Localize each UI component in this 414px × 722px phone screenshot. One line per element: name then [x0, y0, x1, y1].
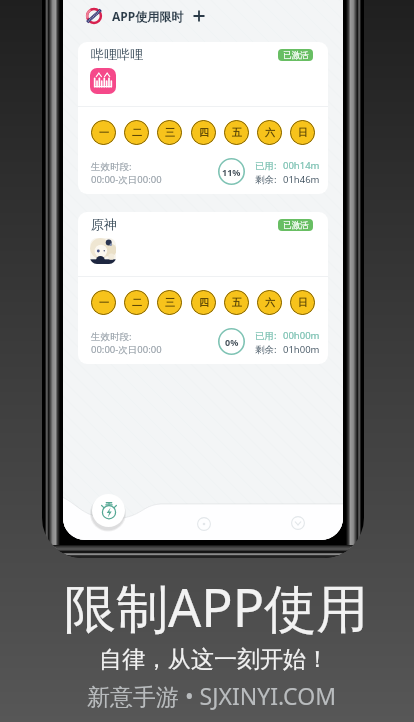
staticText: 三 — [165, 296, 175, 309]
button[interactable]: Back — [291, 516, 305, 530]
staticText: 一 — [99, 126, 109, 139]
button[interactable]: 五 — [224, 290, 249, 315]
button[interactable]: 二 — [124, 290, 149, 315]
button[interactable]: 三 — [157, 290, 182, 315]
staticText: 三 — [165, 126, 175, 139]
staticText: 已激活 — [283, 220, 309, 231]
button[interactable]: 原神 — [78, 212, 328, 364]
button[interactable]: Add — [191, 8, 207, 24]
button[interactable]: 四 — [191, 290, 216, 315]
staticText: 已激活 — [283, 50, 309, 61]
staticText: 11% — [222, 166, 241, 178]
staticText: 二 — [132, 126, 142, 139]
button[interactable]: 哔哩哔哩 — [78, 42, 328, 194]
staticText: 00h14m — [283, 159, 320, 172]
button[interactable]: 日 — [290, 120, 315, 145]
staticText: 00h00m — [283, 329, 320, 342]
staticText: 剩余: — [255, 173, 277, 186]
staticText: 二 — [132, 296, 142, 309]
staticText: 00:00-次日00:00 — [91, 173, 162, 186]
staticText: 生效时段: — [91, 160, 132, 173]
button[interactable]: 二 — [124, 120, 149, 145]
button[interactable]: 一 — [91, 290, 116, 315]
staticText: 日 — [298, 296, 308, 309]
staticText: 哔哩哔哩 — [91, 46, 143, 62]
staticText: 五 — [232, 296, 242, 309]
staticText: 已用: — [255, 159, 277, 172]
staticText: 剩余: — [255, 343, 277, 356]
staticText: 四 — [199, 296, 209, 309]
staticText: 01h00m — [283, 343, 320, 356]
staticText: 六 — [265, 296, 275, 309]
staticText: 新意手游 • SJXINYI.COM — [87, 680, 336, 711]
button[interactable]: 已激活 — [278, 219, 313, 231]
staticText: 已用: — [255, 329, 277, 342]
staticText: 四 — [199, 126, 209, 139]
staticText: 一 — [99, 296, 109, 309]
staticText: 自律，从这一刻开始！ — [99, 645, 329, 674]
staticText: 0% — [225, 336, 239, 348]
staticText: 五 — [232, 126, 242, 139]
staticText: 日 — [298, 126, 308, 139]
staticText: 01h46m — [283, 173, 320, 186]
button[interactable]: 已激活 — [278, 49, 313, 61]
button[interactable]: 三 — [157, 120, 182, 145]
staticText: 六 — [265, 126, 275, 139]
staticText: 限制APP使用 — [64, 571, 369, 642]
staticText: 生效时段: — [91, 330, 132, 343]
staticText: APP使用限时 — [112, 8, 184, 24]
button[interactable]: 四 — [191, 120, 216, 145]
button[interactable]: 六 — [257, 120, 282, 145]
staticText: 原神 — [91, 216, 117, 232]
button[interactable]: 一 — [91, 120, 116, 145]
button[interactable]: 五 — [224, 120, 249, 145]
button[interactable]: 日 — [290, 290, 315, 315]
button[interactable]: 六 — [257, 290, 282, 315]
staticText: 00:00-次日00:00 — [91, 343, 162, 356]
button[interactable]: Home — [197, 517, 211, 531]
button[interactable]: Start timer — [92, 494, 125, 527]
